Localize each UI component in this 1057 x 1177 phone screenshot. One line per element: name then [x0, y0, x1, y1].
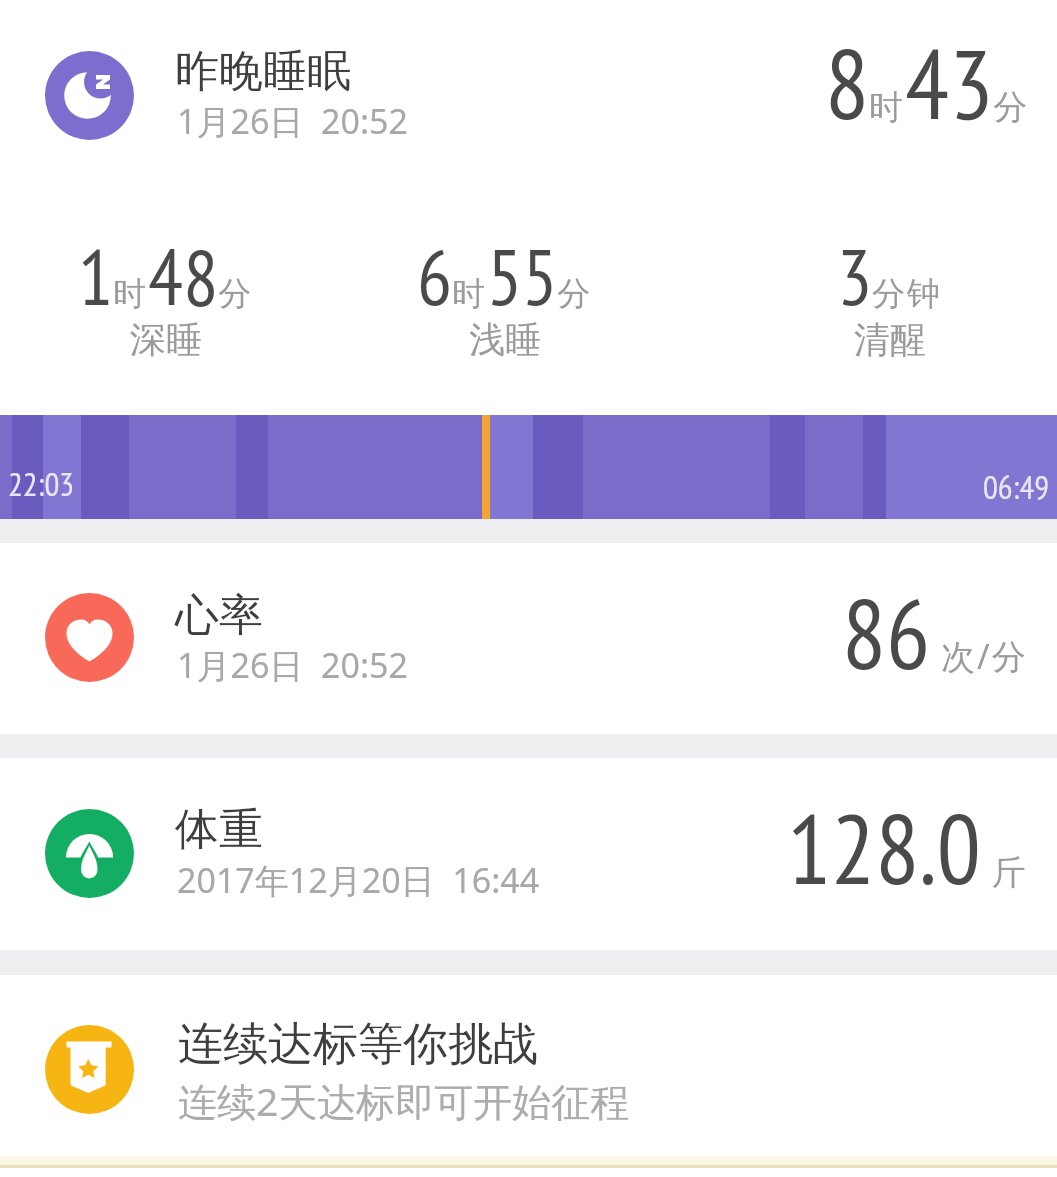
button[interactable]: 昨晚睡眠 — [0, 0, 1057, 519]
staticText: 8时43分 — [825, 19, 1030, 146]
staticText: 体重 — [175, 802, 263, 857]
staticText: 6时55分 — [417, 226, 593, 327]
button[interactable]: 心率 — [0, 543, 1057, 734]
staticText: 22:03 — [8, 462, 75, 505]
staticText: 2017年12月20日 16:44 — [177, 857, 540, 903]
staticText: 清醒 — [854, 317, 926, 362]
button[interactable]: 连续达标等你挑战 — [0, 975, 1057, 1156]
staticText: 1月26日 20:52 — [177, 642, 408, 688]
staticText: 连续2天达标即可开始征程 — [178, 1074, 630, 1127]
staticText: 浅睡 — [469, 317, 541, 362]
staticText: 1时48分 — [78, 226, 254, 327]
staticText: 128.0 斤 — [787, 784, 1028, 911]
staticText: 深睡 — [130, 317, 202, 362]
staticText: 1月26日 20:52 — [177, 98, 408, 144]
staticText: 昨晚睡眠 — [175, 44, 351, 99]
staticText: 06:49 — [983, 465, 1050, 508]
staticText: 连续达标等你挑战 — [178, 1016, 538, 1073]
staticText: 3分钟 — [837, 226, 943, 327]
staticText: 86 次/分 — [842, 569, 1028, 696]
button[interactable]: 体重 — [0, 758, 1057, 950]
staticText: 心率 — [175, 588, 263, 643]
